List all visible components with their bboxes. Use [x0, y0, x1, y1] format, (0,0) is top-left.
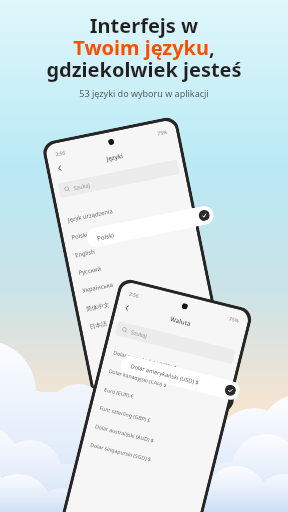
button[interactable]: Dolar amerykański (USD) $ — [119, 354, 242, 402]
staticText: 日本語 — [89, 319, 108, 330]
staticText: Українська — [81, 280, 114, 295]
staticText: 75% — [157, 129, 168, 138]
staticText: Dolar australijski (AUD) $ — [94, 422, 155, 444]
button[interactable]: Русский — [69, 240, 202, 284]
staticText: Русский — [78, 265, 102, 277]
button[interactable]: Українська — [73, 257, 205, 301]
staticText: Dolar amerykański (USD) $ — [113, 349, 178, 371]
button[interactable]: Dolar kanadyjski (CAD) $ — [99, 359, 231, 409]
button[interactable]: Szukaj — [115, 321, 236, 364]
staticText: 2:56 — [55, 149, 66, 158]
staticText: Waluta — [169, 314, 192, 327]
button[interactable]: Dolar australijski (AUD) $ — [85, 414, 217, 465]
staticText: 2:56 — [128, 291, 140, 300]
button[interactable]: English — [65, 222, 198, 266]
button[interactable]: Polski — [62, 204, 195, 248]
button[interactable]: Back — [120, 301, 134, 315]
button[interactable]: Szukaj — [57, 159, 180, 198]
staticText: 75% — [228, 315, 240, 325]
staticText: Dolar amerykański (USD) $ — [130, 362, 200, 387]
staticText: 简体中文 — [85, 301, 110, 312]
staticText: Polski — [96, 230, 114, 242]
staticText: Euro (EUR) € — [104, 385, 134, 399]
button[interactable]: Back — [53, 162, 66, 175]
button[interactable]: Euro (EUR) € — [94, 378, 226, 428]
button[interactable]: Funt szterling (GBP) £ — [90, 396, 221, 446]
button[interactable]: Polski — [85, 204, 215, 248]
staticText: Szukaj — [130, 328, 148, 339]
staticText: Polski — [71, 230, 89, 242]
button[interactable]: Język urządzenia — [58, 187, 191, 231]
button[interactable]: 日本語 — [80, 292, 213, 336]
button[interactable]: Dolar amerykański (USD) $ — [104, 341, 235, 391]
staticText: Funt szterling (GBP) £ — [99, 404, 152, 423]
staticText: Interfejs w Twoim języku, gdziekolwiek j… — [46, 12, 242, 83]
button[interactable]: 简体中文 — [76, 275, 209, 319]
staticText: Dolar singapurski (SGD) $ — [90, 441, 153, 463]
staticText: Języki — [106, 151, 124, 162]
staticText: Dolar kanadyjski (CAD) $ — [108, 367, 168, 388]
staticText: 53 języki do wyboru w aplikacji — [79, 87, 209, 99]
staticText: Język urządzenia — [67, 207, 114, 224]
staticText: English — [74, 247, 96, 259]
staticText: Szukaj — [73, 181, 91, 191]
button[interactable]: Dolar singapurski (SGD) $ — [81, 433, 212, 483]
